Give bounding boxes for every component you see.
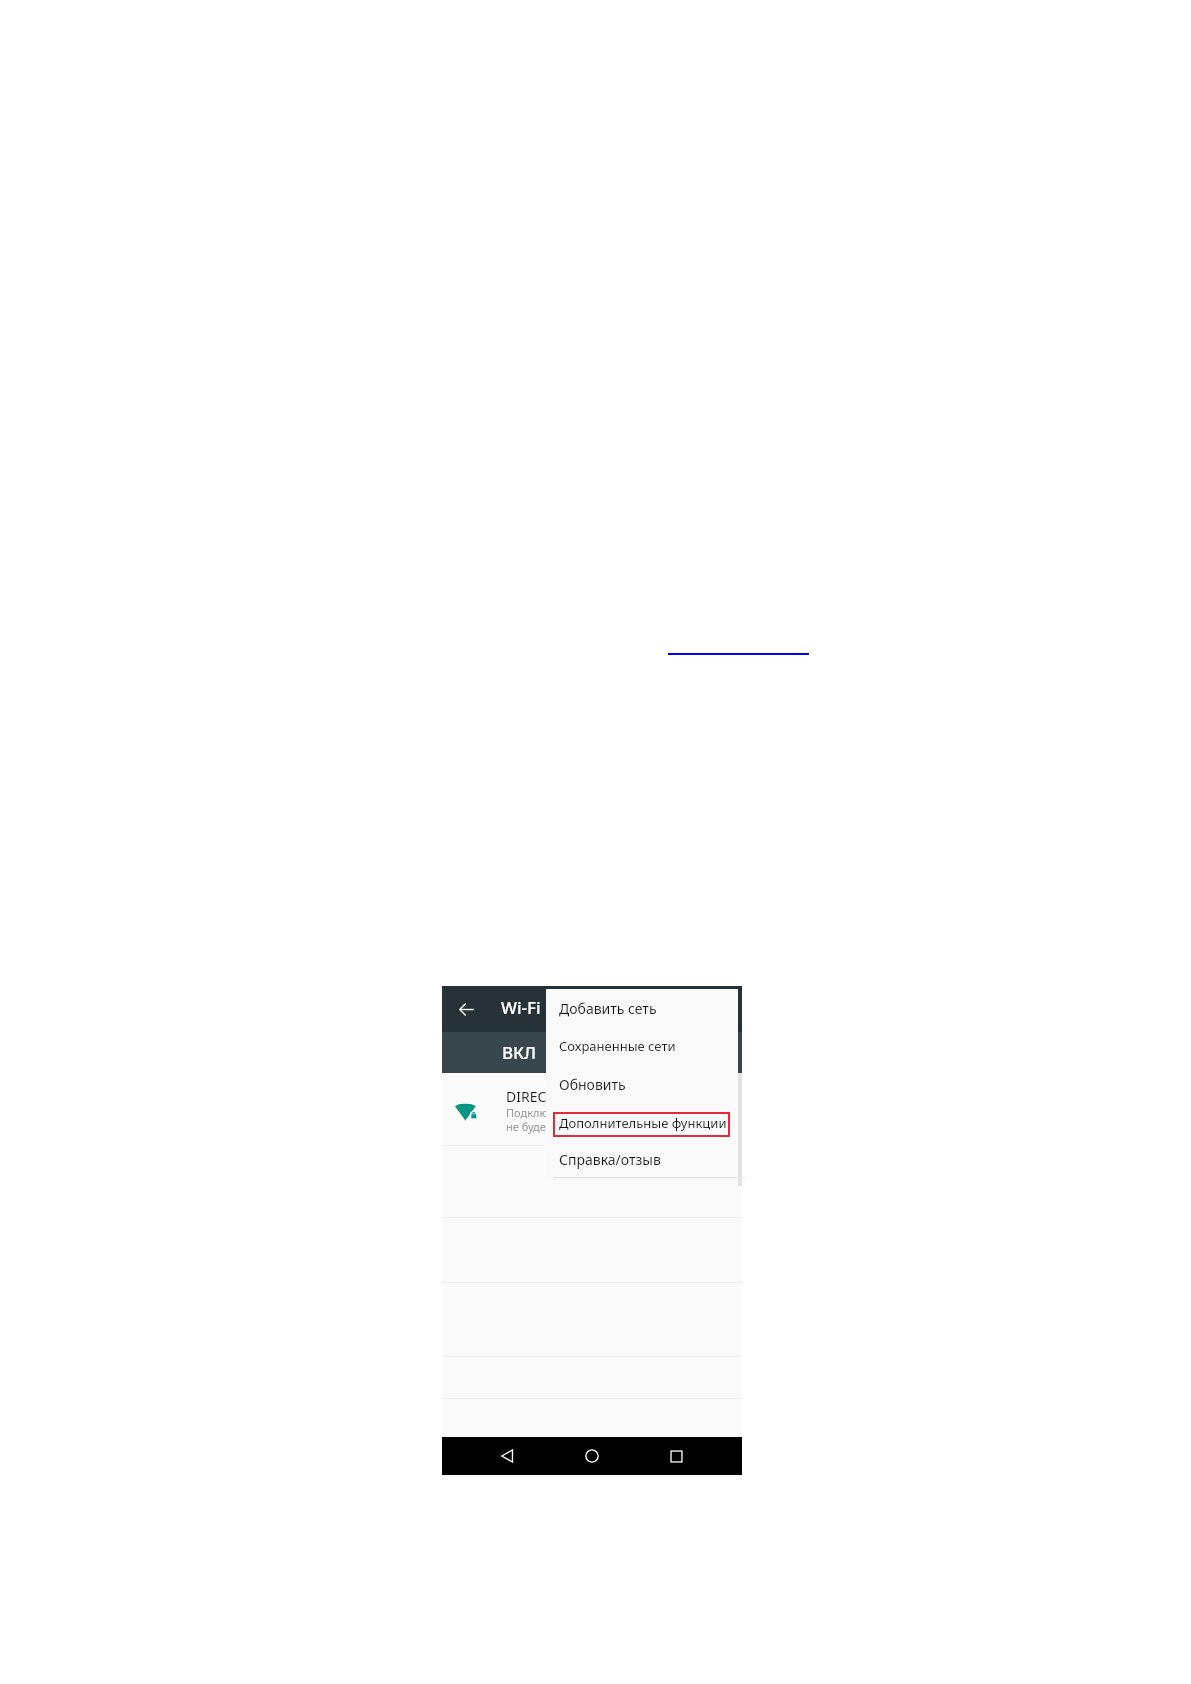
staticText: Добавить сеть: [559, 999, 657, 1018]
button[interactable]: Сохраненные сети: [546, 1027, 738, 1065]
button[interactable]: More options: [710, 986, 742, 1032]
button[interactable]: DIRECT-3F-HP M281 LaserJet: [442, 1073, 742, 1145]
staticText: Обновить: [559, 1075, 626, 1094]
button[interactable]: Справка/отзыв: [546, 1140, 738, 1178]
button[interactable]: Дополнительные функции: [546, 1104, 738, 1142]
staticText: Подключение к Интернету не будет выполне…: [506, 1105, 649, 1134]
button[interactable]: Back: [450, 986, 482, 1032]
button[interactable]: Home: [564, 1437, 620, 1475]
staticText: Wi-Fi: [501, 996, 541, 1019]
staticText: Дополнительные функции: [559, 1114, 727, 1132]
staticText: Справка/отзыв: [559, 1150, 661, 1169]
button[interactable]: Back: [480, 1437, 536, 1475]
button[interactable]: Recents: [648, 1437, 704, 1475]
button[interactable]: Добавить сеть: [546, 989, 738, 1027]
staticText: DIRECT-3F-HP M281 LaserJet: [506, 1087, 694, 1106]
button[interactable]: ВКЛ: [442, 1032, 742, 1073]
button[interactable]: Обновить: [546, 1065, 738, 1103]
staticText: Сохраненные сети: [559, 1037, 676, 1055]
staticText: ВКЛ: [502, 1041, 537, 1064]
